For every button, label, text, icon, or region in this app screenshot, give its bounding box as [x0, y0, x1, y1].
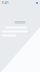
- staticText: 9:41: [2, 1, 9, 5]
- button[interactable]: Message two: [0, 31, 28, 32]
- button[interactable]: Message three: [0, 35, 16, 36]
- button[interactable]: Message one: [0, 27, 27, 28]
